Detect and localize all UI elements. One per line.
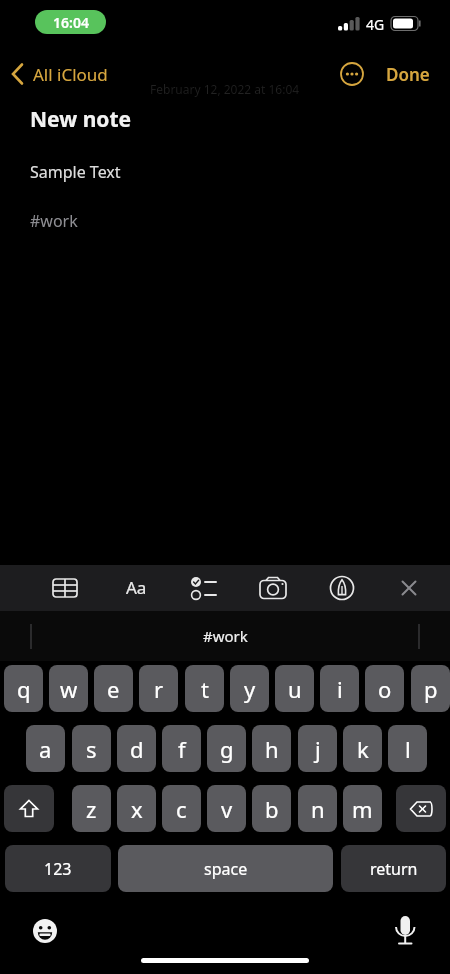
button[interactable]: Aa (118, 569, 154, 605)
staticText: m (352, 794, 373, 824)
button[interactable]: w (49, 665, 88, 712)
staticText: f (178, 734, 186, 764)
button[interactable] (186, 571, 220, 605)
button[interactable] (4, 785, 54, 832)
button[interactable]: q (4, 665, 43, 712)
button[interactable]: space (118, 845, 333, 892)
staticText: 16:04 (53, 13, 89, 32)
button[interactable]: l (388, 725, 427, 772)
button[interactable] (325, 571, 359, 605)
button[interactable] (31, 917, 59, 945)
staticText: d (130, 734, 144, 764)
button[interactable]: o (365, 665, 404, 712)
staticText: p (424, 674, 438, 704)
button[interactable]: b (252, 785, 291, 832)
staticText: b (265, 794, 279, 824)
staticText: x (131, 794, 143, 824)
button[interactable]: 123 (5, 845, 111, 892)
button[interactable]: x (117, 785, 156, 832)
staticText: #work (203, 626, 248, 646)
button[interactable]: a (26, 725, 65, 772)
button[interactable]: j (298, 725, 337, 772)
staticText: t (201, 674, 209, 704)
staticText: k (357, 734, 369, 764)
button[interactable]: y (230, 665, 269, 712)
staticText: s (86, 734, 97, 764)
button[interactable] (391, 913, 421, 943)
button[interactable]: c (162, 785, 201, 832)
button[interactable]: p (411, 665, 450, 712)
staticText: a (39, 734, 52, 764)
button[interactable]: Done (386, 63, 430, 86)
staticText: return (370, 858, 418, 880)
staticText: All iCloud (33, 63, 108, 86)
staticText: i (337, 674, 343, 704)
button[interactable]: 16:04 (35, 10, 106, 34)
staticText: New note (30, 105, 132, 134)
staticText: c (176, 794, 187, 824)
staticText: h (265, 734, 279, 764)
button[interactable]: e (94, 665, 133, 712)
staticText: w (60, 674, 78, 704)
staticText: q (17, 674, 31, 704)
button[interactable]: m (343, 785, 382, 832)
button[interactable] (256, 571, 290, 605)
button[interactable] (392, 571, 426, 605)
button[interactable]: v (207, 785, 246, 832)
staticText: February 12, 2022 at 16:04 (150, 81, 300, 97)
staticText: j (315, 734, 321, 764)
staticText: 4G (366, 15, 385, 34)
button[interactable]: g (207, 725, 246, 772)
staticText: l (405, 734, 411, 764)
staticText: e (107, 674, 120, 704)
staticText: y (244, 674, 256, 704)
button[interactable]: n (298, 785, 337, 832)
staticText: space (204, 858, 248, 880)
staticText: 123 (44, 858, 72, 880)
button[interactable]: All iCloud (10, 58, 108, 90)
button[interactable]: return (341, 845, 446, 892)
button[interactable]: s (72, 725, 111, 772)
staticText: Sample Text (30, 161, 121, 183)
button[interactable]: f (162, 725, 201, 772)
staticText: o (378, 674, 392, 704)
button[interactable]: h (252, 725, 291, 772)
button[interactable]: #work (0, 611, 450, 661)
staticText: Aa (126, 576, 147, 599)
button[interactable]: d (117, 725, 156, 772)
staticText: z (86, 794, 97, 824)
staticText: g (220, 734, 234, 764)
button[interactable] (48, 571, 82, 605)
staticText: #work (30, 210, 78, 232)
button[interactable]: k (343, 725, 382, 772)
button[interactable]: r (139, 665, 178, 712)
button[interactable]: u (275, 665, 314, 712)
staticText: n (311, 794, 325, 824)
staticText: r (154, 674, 164, 704)
button[interactable] (396, 785, 446, 832)
staticText: u (288, 674, 302, 704)
staticText: v (221, 794, 233, 824)
button[interactable]: t (185, 665, 224, 712)
button[interactable] (340, 62, 364, 86)
button[interactable]: i (320, 665, 359, 712)
button[interactable]: z (72, 785, 111, 832)
